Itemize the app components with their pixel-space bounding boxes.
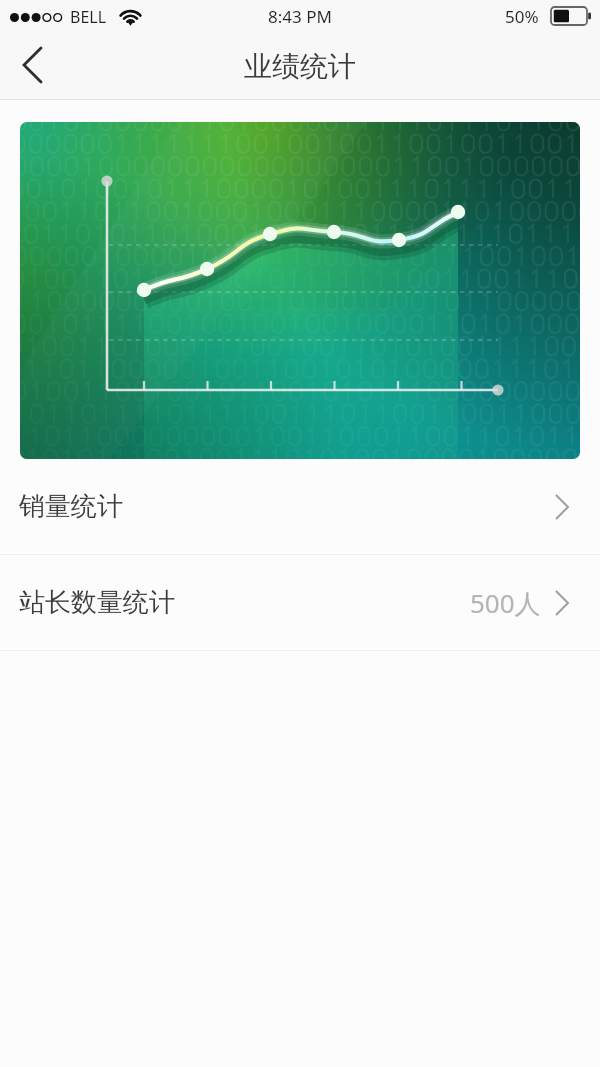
button[interactable]: Back xyxy=(0,35,66,100)
staticText: 500人 xyxy=(470,585,541,621)
button[interactable]: 销量统计 xyxy=(0,459,600,554)
staticText: 站长数量统计 xyxy=(19,586,175,619)
staticText: 50% xyxy=(505,5,539,28)
button[interactable]: 站长数量统计 xyxy=(0,555,600,650)
staticText: 业绩统计 xyxy=(244,49,356,84)
button[interactable] xyxy=(20,122,580,459)
staticText: 8:43 PM xyxy=(268,5,332,28)
staticText: 销量统计 xyxy=(19,490,123,523)
staticText: BELL xyxy=(70,6,107,28)
